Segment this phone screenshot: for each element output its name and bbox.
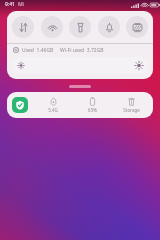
button[interactable] (12, 57, 148, 74)
staticText: Mi (18, 1, 24, 8)
staticText: Wi-Fi used 3.72GB (60, 47, 104, 54)
button[interactable]: Screenshot (126, 16, 148, 38)
button[interactable]: Silent (98, 16, 120, 38)
button[interactable]: Network (40, 97, 66, 113)
button[interactable]: Battery (79, 97, 105, 113)
button[interactable]: Storage (118, 97, 144, 113)
staticText: 5.4G (48, 107, 58, 113)
staticText: Storage (123, 107, 140, 113)
staticText: Used 1.46GB (22, 47, 54, 54)
button[interactable]: Wi-Fi (41, 16, 63, 38)
button[interactable]: Mobile data (12, 16, 34, 38)
button[interactable]: Security (12, 97, 28, 113)
staticText: 65% (88, 107, 97, 113)
staticText: 9:41 (5, 1, 15, 8)
button[interactable]: Flashlight (69, 16, 91, 38)
